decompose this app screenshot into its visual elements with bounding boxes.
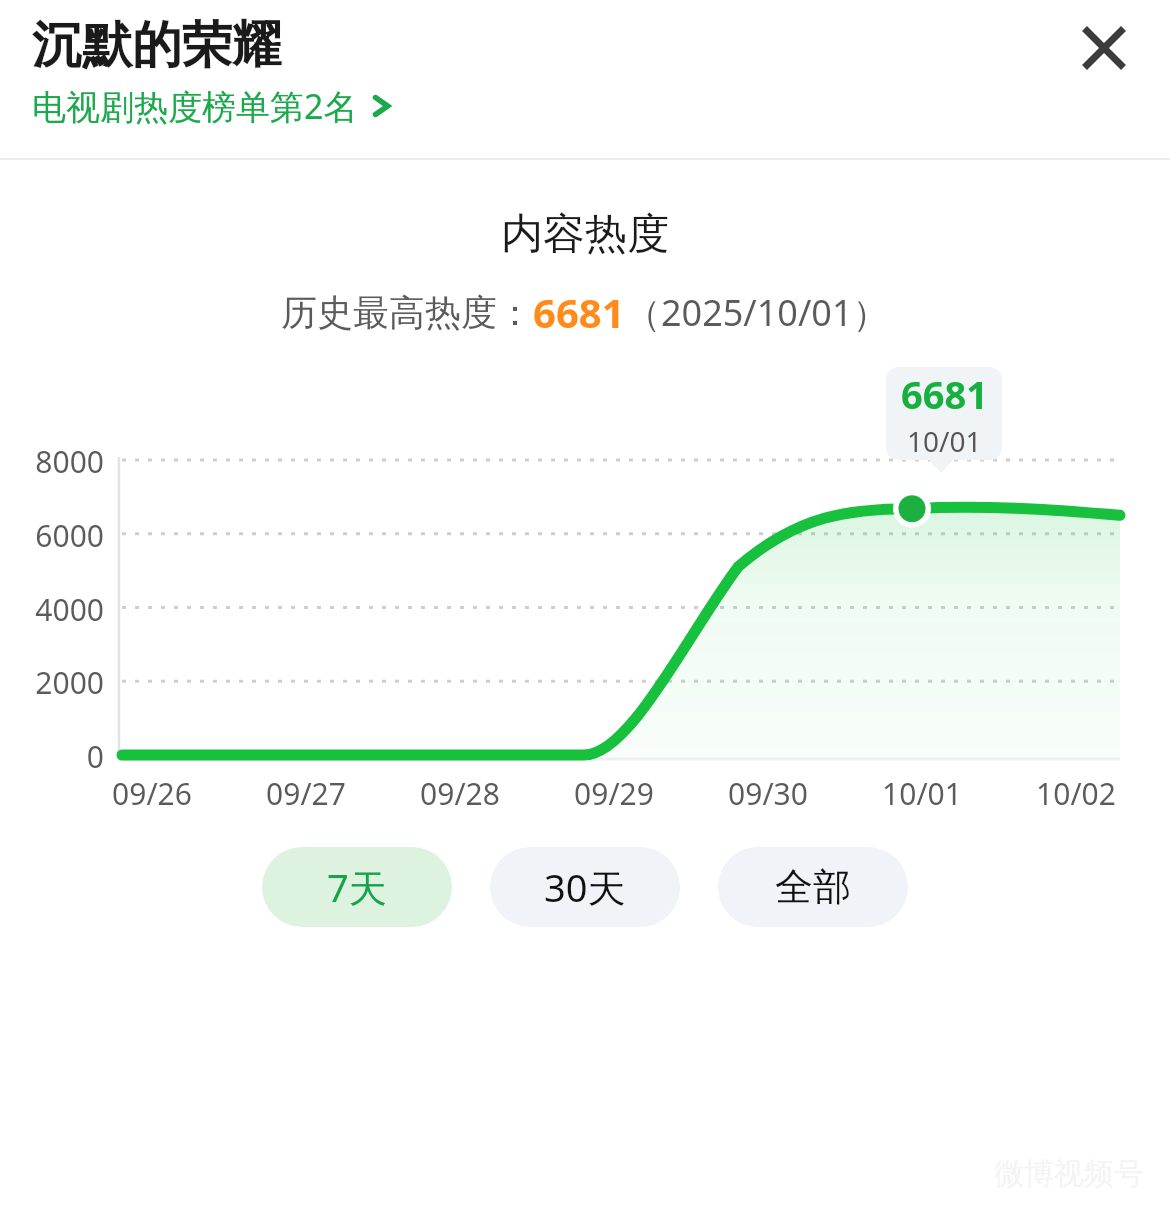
staticText: 2000 xyxy=(0,662,104,703)
button[interactable]: 7天 xyxy=(262,847,452,927)
staticText: 10/01 xyxy=(852,773,992,814)
staticText: 09/28 xyxy=(390,773,530,814)
staticText: 沉默的荣耀 xyxy=(32,14,282,77)
staticText: 8000 xyxy=(0,441,104,482)
staticText: 6681 xyxy=(533,285,625,339)
staticText: 09/26 xyxy=(82,773,222,814)
staticText: 历史最高热度： xyxy=(281,290,533,335)
button[interactable]: 30天 xyxy=(490,847,680,927)
staticText: 电视剧热度榜单第2名 xyxy=(32,83,358,129)
button[interactable]: 全部 xyxy=(718,847,908,927)
staticText: 微博视频号 xyxy=(994,1155,1144,1193)
staticText: 09/30 xyxy=(698,773,838,814)
staticText: 30天 xyxy=(544,861,626,913)
staticText: 09/27 xyxy=(236,773,376,814)
staticText: 6000 xyxy=(0,515,104,556)
button[interactable]: 电视剧热度榜单第2名 xyxy=(32,83,398,129)
staticText: 10/01 xyxy=(907,422,982,460)
staticText: （2025/10/01） xyxy=(625,288,889,337)
staticText: 4000 xyxy=(0,589,104,630)
button[interactable]: Close xyxy=(1068,12,1140,84)
staticText: 7天 xyxy=(327,861,387,913)
staticText: 09/29 xyxy=(544,773,684,814)
staticText: 10/02 xyxy=(1006,773,1146,814)
staticText: 内容热度 xyxy=(0,208,1170,261)
staticText: 6681 xyxy=(901,368,988,420)
staticText: 0 xyxy=(0,736,104,777)
staticText: 全部 xyxy=(775,863,851,911)
